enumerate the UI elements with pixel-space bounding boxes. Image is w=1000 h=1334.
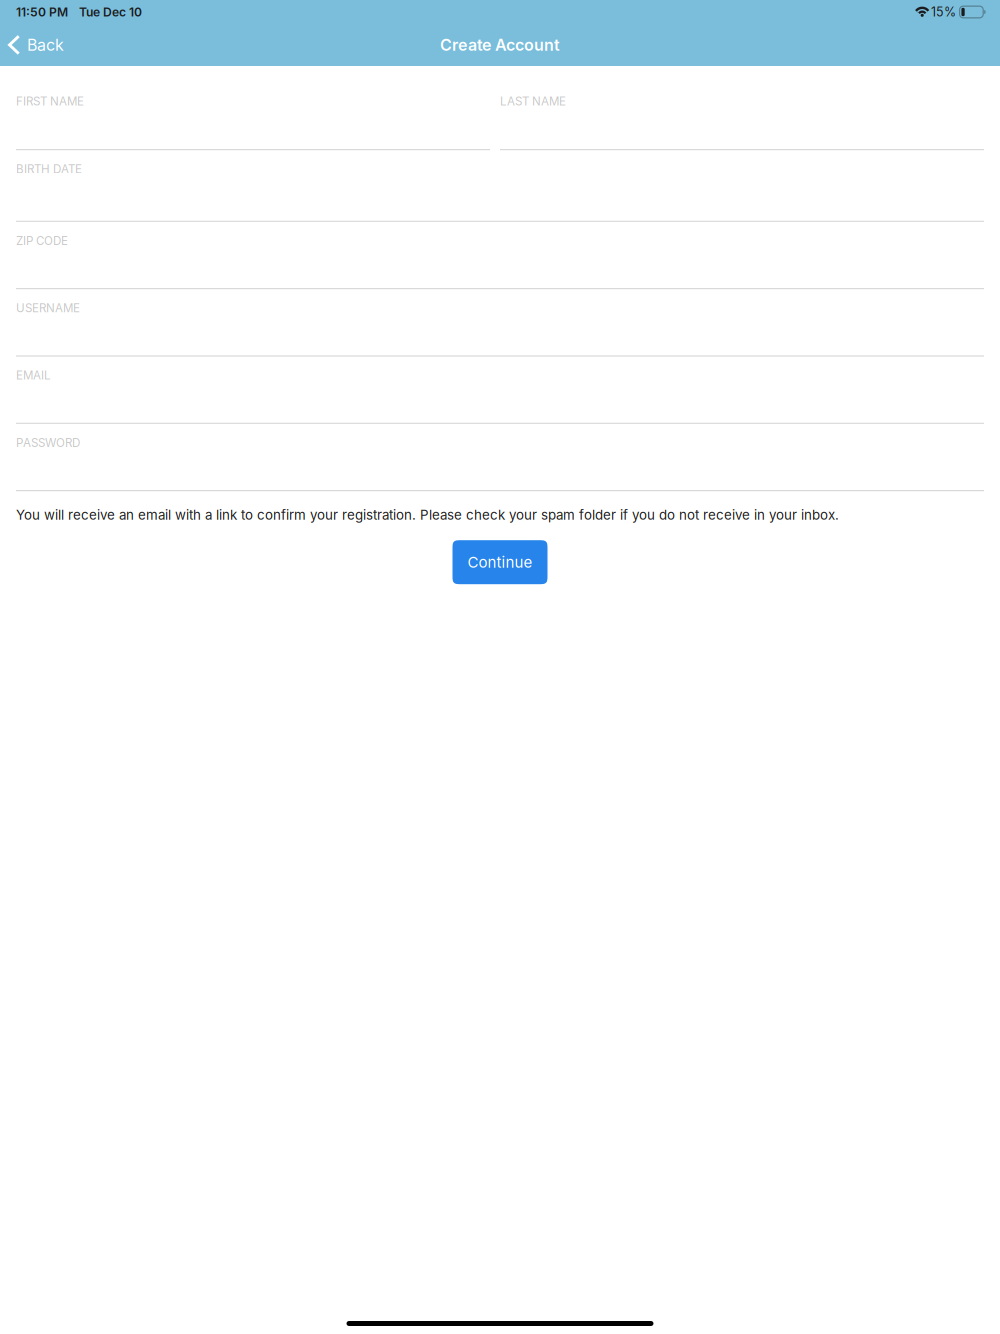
- staticText: Tue Dec 10: [79, 5, 142, 19]
- button[interactable]: EMAIL: [16, 357, 984, 424]
- button[interactable]: USERNAME: [16, 289, 984, 357]
- staticText: 11:50 PM: [16, 5, 68, 19]
- button[interactable]: ZIP CODE: [16, 222, 984, 289]
- button[interactable]: Continue: [452, 540, 547, 584]
- staticText: LAST NAME: [500, 94, 566, 108]
- staticText: You will receive an email with a link to…: [16, 507, 839, 523]
- button[interactable]: FIRST NAME: [16, 82, 490, 150]
- button[interactable]: Back: [0, 24, 78, 66]
- staticText: EMAIL: [16, 368, 51, 382]
- button[interactable]: BIRTH DATE: [16, 150, 984, 222]
- staticText: BIRTH DATE: [16, 162, 82, 176]
- staticText: 15%: [931, 4, 956, 19]
- button[interactable]: PASSWORD: [16, 424, 984, 491]
- staticText: FIRST NAME: [16, 94, 84, 108]
- staticText: ZIP CODE: [16, 234, 68, 248]
- button[interactable]: LAST NAME: [500, 82, 984, 150]
- staticText: Create Account: [440, 35, 560, 55]
- staticText: Back: [27, 35, 64, 55]
- staticText: PASSWORD: [16, 436, 80, 450]
- staticText: USERNAME: [16, 301, 80, 315]
- staticText: Continue: [467, 553, 532, 571]
